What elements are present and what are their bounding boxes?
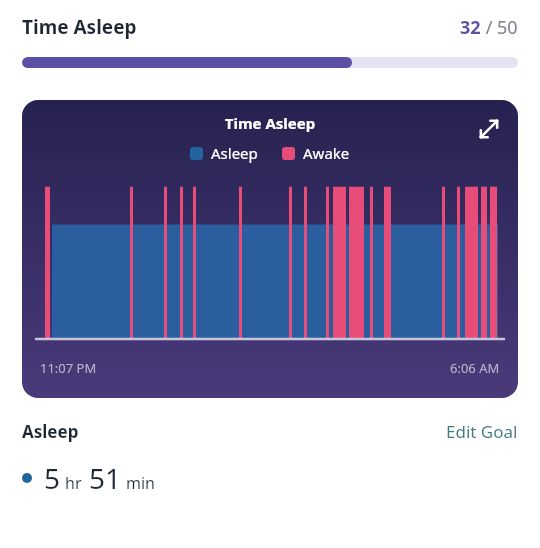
staticText: Edit Goal (446, 420, 518, 443)
staticText: Time Asleep (22, 113, 518, 133)
button[interactable]: Edit Goal (446, 420, 518, 443)
staticText: 6:06 AM (450, 359, 500, 377)
staticText: 5 (44, 459, 61, 497)
staticText: Asleep (211, 143, 258, 163)
button[interactable]: Time Asleep (22, 100, 518, 398)
staticText: min (126, 472, 155, 494)
staticText: 51 (89, 459, 122, 497)
staticText: / 50 (481, 15, 518, 40)
staticText: hr (65, 472, 82, 494)
staticText: Time Asleep (22, 14, 137, 40)
staticText: Asleep (22, 420, 79, 443)
staticText: 11:07 PM (40, 359, 97, 377)
staticText: Awake (303, 143, 350, 163)
staticText: 32 (460, 15, 481, 40)
button[interactable]: Expand chart (472, 112, 506, 146)
